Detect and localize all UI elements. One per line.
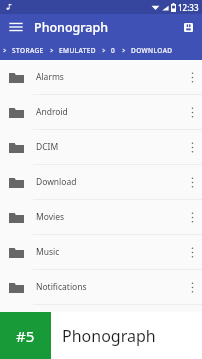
button[interactable]: Pictures xyxy=(0,305,202,339)
staticText: Music xyxy=(36,246,182,258)
button[interactable]: More options for DCIM xyxy=(182,130,202,164)
staticText: DCIM xyxy=(36,141,182,153)
staticText: DOWNLOAD xyxy=(131,46,173,55)
staticText: EMULATED xyxy=(59,46,96,55)
staticText: STORAGE xyxy=(12,46,44,55)
staticText: Android xyxy=(36,106,182,118)
button[interactable]: More options for Music xyxy=(182,235,202,269)
button[interactable]: 0 xyxy=(107,44,120,57)
button[interactable]: STORAGE xyxy=(8,44,48,57)
button[interactable]: More options for Notifications xyxy=(182,270,202,304)
staticText: Phonograph Musi... xyxy=(62,325,202,347)
button[interactable]: Music xyxy=(0,235,202,269)
staticText: 12:33 xyxy=(178,2,199,13)
button[interactable]: More options for Android xyxy=(182,95,202,129)
button[interactable]: More options for Movies xyxy=(182,200,202,234)
staticText: #5 xyxy=(16,326,35,346)
button[interactable]: Open navigation drawer xyxy=(6,17,26,37)
button[interactable]: More options for Download xyxy=(182,165,202,199)
button[interactable]: More options for Alarms xyxy=(182,60,202,94)
button[interactable]: Download xyxy=(0,165,202,199)
button[interactable]: Storage xyxy=(178,17,198,37)
staticText: Alarms xyxy=(36,71,182,83)
button[interactable]: Android xyxy=(0,95,202,129)
staticText: Download xyxy=(36,176,182,188)
button[interactable]: Notifications xyxy=(0,270,202,304)
staticText: 0 xyxy=(111,46,116,55)
button[interactable]: Movies xyxy=(0,200,202,234)
staticText: Pictures xyxy=(36,316,182,328)
staticText: Notifications xyxy=(36,281,182,293)
staticText: Movies xyxy=(36,211,182,223)
staticText: Phonograph xyxy=(34,19,109,36)
button[interactable]: DCIM xyxy=(0,130,202,164)
button[interactable]: DOWNLOAD xyxy=(127,44,177,57)
button[interactable]: EMULATED xyxy=(55,44,100,57)
button[interactable]: Alarms xyxy=(0,60,202,94)
